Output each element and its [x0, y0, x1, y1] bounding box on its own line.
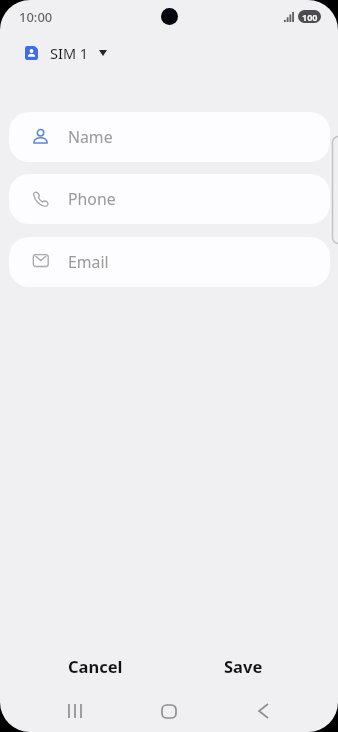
button[interactable]: Cancel: [21, 644, 169, 688]
button[interactable]: SIM 1: [19, 36, 113, 70]
staticText: 10:00: [19, 8, 53, 26]
staticText: Phone: [68, 188, 116, 210]
staticText: Cancel: [68, 655, 123, 677]
button[interactable]: Name: [9, 112, 330, 162]
button[interactable]: Phone: [9, 174, 330, 224]
button[interactable]: Recents: [28, 691, 122, 731]
staticText: 100: [302, 11, 318, 23]
staticText: SIM 1: [50, 43, 89, 63]
button[interactable]: Back: [216, 691, 310, 731]
staticText: Save: [224, 655, 263, 677]
staticText: Name: [68, 126, 113, 148]
button[interactable]: Email: [9, 237, 330, 287]
button[interactable]: Home: [122, 691, 216, 731]
staticText: Email: [68, 251, 109, 273]
button[interactable]: Save: [169, 644, 317, 688]
